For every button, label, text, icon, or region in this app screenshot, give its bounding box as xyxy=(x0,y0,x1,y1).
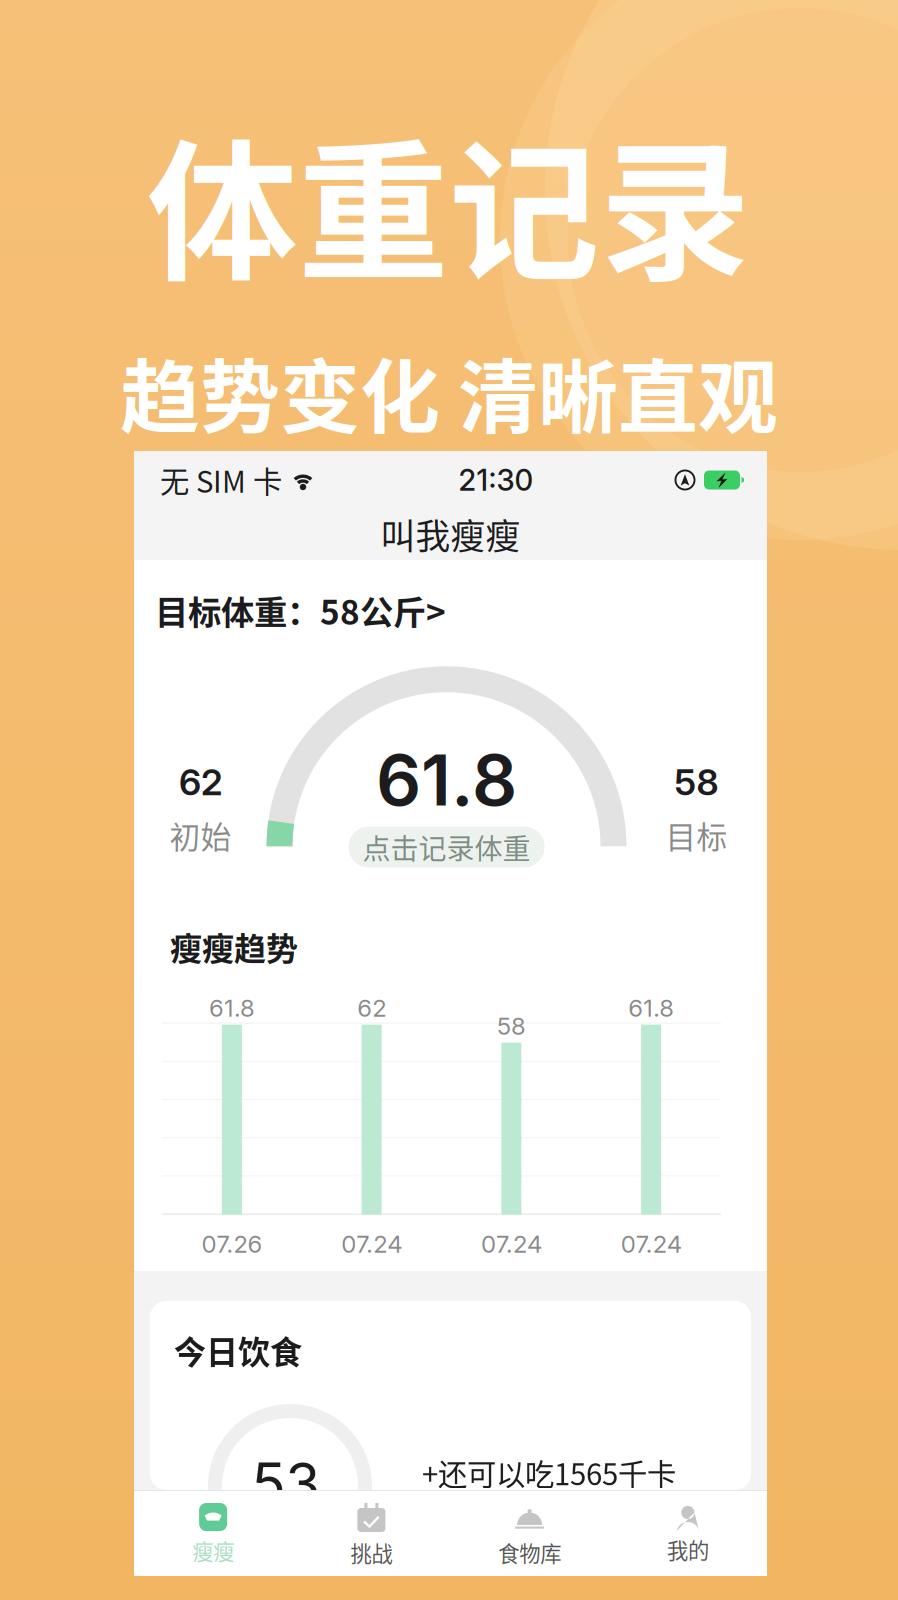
button[interactable]: 挑战 xyxy=(292,1491,450,1576)
staticText: 21:30 xyxy=(458,462,533,498)
staticText: 62 xyxy=(357,994,386,1023)
staticText: 53 xyxy=(251,1449,320,1517)
staticText: 58 xyxy=(497,1012,526,1041)
staticText: +还可以吃1565千卡 xyxy=(422,1451,676,1494)
staticText: 初始 xyxy=(169,813,231,857)
staticText: 趋势变化 清晰直观 xyxy=(120,333,778,449)
staticText: 58 xyxy=(674,760,718,804)
staticText: 62 xyxy=(179,760,222,804)
staticText: 07.24 xyxy=(621,1230,682,1259)
staticText: 瘦瘦趋势 xyxy=(170,923,298,970)
staticText: 瘦瘦 xyxy=(192,1535,234,1566)
staticText: 目标 xyxy=(665,813,727,857)
button[interactable]: 瘦瘦 xyxy=(134,1491,292,1576)
button[interactable]: 食物库 xyxy=(450,1491,609,1576)
staticText: 我的 xyxy=(667,1534,709,1565)
staticText: 07.26 xyxy=(201,1230,262,1259)
button[interactable]: 目标体重：58公斤> xyxy=(134,560,767,640)
staticText: 07.24 xyxy=(481,1230,542,1259)
staticText: 61.8 xyxy=(376,737,517,822)
staticText: 07.24 xyxy=(341,1230,402,1259)
staticText: 食物库 xyxy=(498,1537,561,1568)
staticText: 61.8 xyxy=(209,994,255,1023)
staticText: 目标体重：58公斤> xyxy=(155,586,446,634)
staticText: 无 SIM 卡 xyxy=(160,459,282,501)
button[interactable]: 点击记录体重 xyxy=(348,826,544,867)
staticText: 叫我瘦瘦 xyxy=(380,509,520,559)
staticText: 61.8 xyxy=(628,994,674,1023)
staticText: 挑战 xyxy=(350,1537,392,1568)
staticText: 今日饮食 xyxy=(174,1327,302,1373)
button[interactable]: 我的 xyxy=(609,1491,767,1576)
staticText: 点击记录体重 xyxy=(362,827,530,867)
staticText: 体重记录 xyxy=(147,93,751,311)
